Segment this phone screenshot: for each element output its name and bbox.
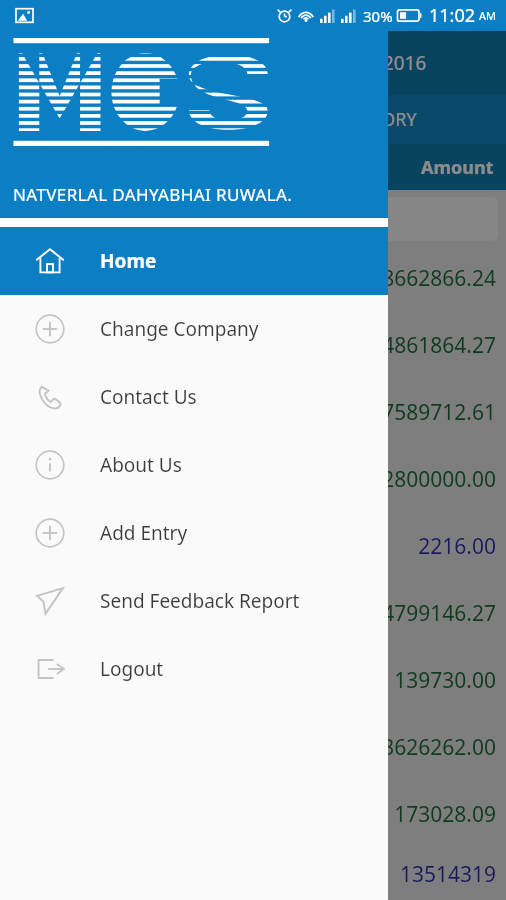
staticText: Amount — [421, 155, 494, 180]
staticText: 139730.00 — [394, 666, 496, 695]
button[interactable]: About Us — [0, 431, 388, 499]
staticText: 173028.09 — [394, 800, 496, 829]
button[interactable]: Logout — [0, 635, 388, 703]
staticText: Home — [100, 248, 157, 274]
staticText: Contact Us — [100, 384, 197, 410]
staticText: 13514319 — [399, 860, 496, 889]
staticText: 17589712.61 — [370, 398, 496, 427]
staticText: Change Company — [100, 316, 259, 342]
button[interactable]: Home — [0, 227, 388, 295]
staticText: 3626262.00 — [382, 733, 496, 762]
button[interactable]: Add Entry — [0, 499, 388, 567]
button[interactable]: Change Company — [0, 295, 388, 363]
staticText: AM — [479, 8, 497, 23]
other: Screenshot — [16, 7, 33, 24]
staticText: 30% — [363, 6, 393, 26]
staticText: Send Feedback Report — [100, 588, 300, 614]
staticText: 12800000.00 — [370, 465, 496, 494]
button[interactable]: Contact Us — [0, 363, 388, 431]
staticText: Add Entry — [100, 520, 188, 546]
button[interactable]: Send Feedback Report — [0, 567, 388, 635]
staticText: 11:02 — [429, 3, 476, 28]
staticText: NATVERLAL DAHYABHAI RUWALA. — [13, 183, 293, 206]
staticText: 44861864.27 — [370, 331, 496, 360]
staticText: 14799146.27 — [370, 599, 496, 628]
staticText: About Us — [100, 452, 182, 478]
staticText: 2216.00 — [418, 532, 496, 561]
staticText: Logout — [100, 656, 164, 682]
staticText: 128662866.24 — [358, 264, 496, 293]
staticText: TRANSACTION HISTORY — [215, 107, 417, 132]
staticText: COMPANY : NATDR 2016 — [210, 50, 427, 76]
